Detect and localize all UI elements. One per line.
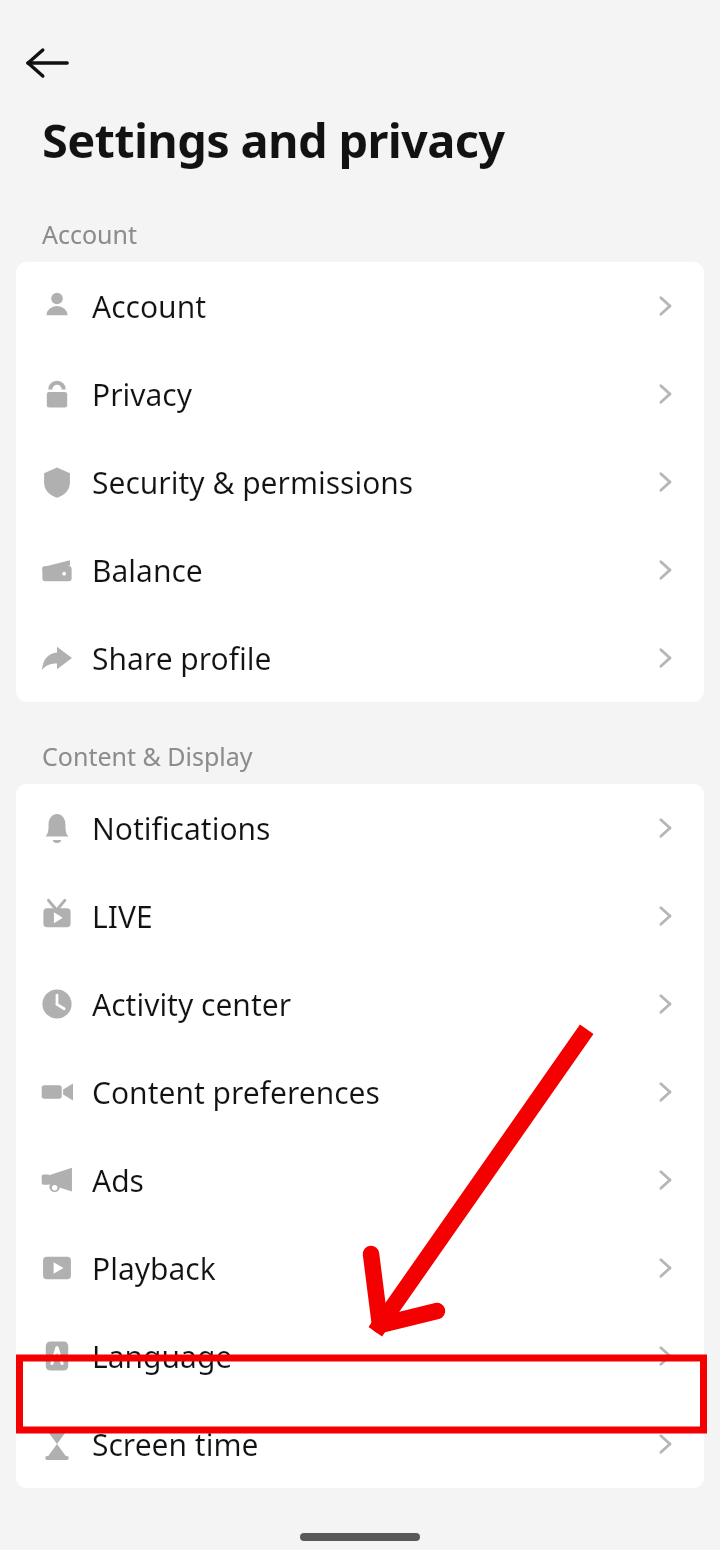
- button[interactable]: Security & permissions: [16, 438, 704, 526]
- staticText: Content preferences: [92, 1072, 652, 1113]
- button[interactable]: Share profile: [16, 614, 704, 702]
- staticText: Settings and privacy: [42, 108, 505, 172]
- staticText: Notifications: [92, 808, 652, 849]
- button[interactable]: Privacy: [16, 350, 704, 438]
- staticText: Screen time: [92, 1424, 652, 1465]
- staticText: Content & Display: [42, 739, 253, 773]
- staticText: Security & permissions: [92, 462, 652, 503]
- staticText: Ads: [92, 1160, 652, 1201]
- button[interactable]: Language: [16, 1312, 704, 1400]
- staticText: Language: [92, 1336, 652, 1377]
- staticText: Playback: [92, 1248, 652, 1289]
- button[interactable]: Back: [12, 28, 82, 98]
- staticText: Activity center: [92, 984, 652, 1025]
- button[interactable]: Ads: [16, 1136, 704, 1224]
- staticText: Privacy: [92, 374, 652, 415]
- button[interactable]: Notifications: [16, 784, 704, 872]
- button[interactable]: Playback: [16, 1224, 704, 1312]
- staticText: Balance: [92, 550, 652, 591]
- staticText: Account: [92, 286, 652, 327]
- button[interactable]: Balance: [16, 526, 704, 614]
- staticText: LIVE: [92, 896, 652, 937]
- button[interactable]: LIVE: [16, 872, 704, 960]
- button[interactable]: Content preferences: [16, 1048, 704, 1136]
- button[interactable]: Screen time: [16, 1400, 704, 1488]
- button[interactable]: Activity center: [16, 960, 704, 1048]
- button[interactable]: Account: [16, 262, 704, 350]
- staticText: Share profile: [92, 638, 652, 679]
- staticText: Account: [42, 217, 138, 251]
